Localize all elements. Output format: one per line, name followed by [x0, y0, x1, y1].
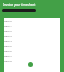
staticText: Item 0: [4, 19, 12, 22]
staticText: Item 4: [4, 39, 12, 42]
staticText: Item 7: [4, 54, 12, 57]
staticText: Item 3: [4, 34, 12, 37]
staticText: Item 6: [4, 49, 12, 52]
staticText: Item 8: [4, 59, 12, 62]
button[interactable]: Add: [28, 62, 33, 67]
staticText: Item 5: [4, 44, 12, 47]
staticText: Item 2: [4, 29, 12, 32]
staticText: Invoice your timesheet: [3, 3, 36, 7]
staticText: Item 1: [4, 24, 12, 27]
